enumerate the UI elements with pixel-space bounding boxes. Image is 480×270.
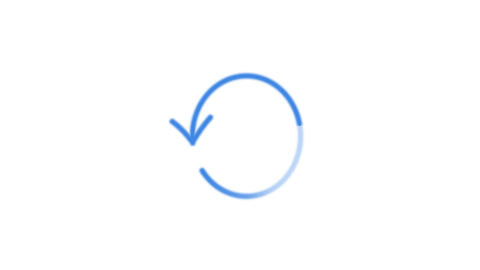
button[interactable]: Refresh: [0, 0, 480, 270]
